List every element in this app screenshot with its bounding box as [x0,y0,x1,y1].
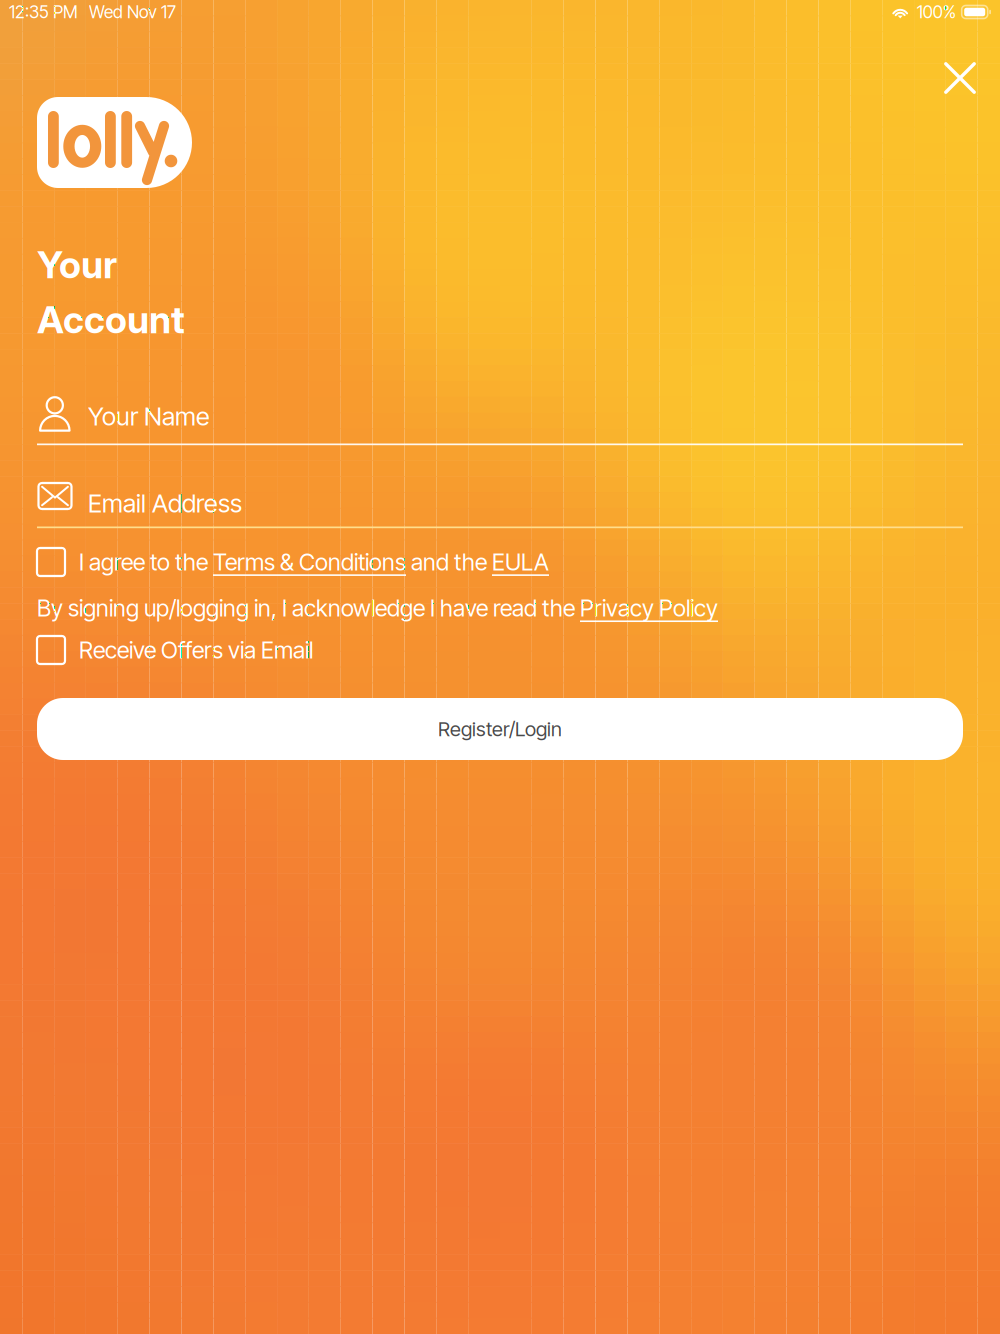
staticText: Email Address [88,488,242,519]
staticText: Your [37,242,117,287]
staticText: Receive Offers via Email [79,636,313,664]
staticText: I agree to the Terms & Conditions and th… [79,548,549,576]
button[interactable]: Receive Offers via Email [37,636,963,664]
staticText: By signing up/logging in, I acknowledge … [37,594,718,622]
staticText: 12:35 PM [9,1,78,22]
staticText: 100% [917,1,956,22]
button[interactable]: I agree to the Terms & Conditions and th… [37,548,963,576]
staticText: Account [37,297,185,342]
button[interactable]: Register/Login [37,698,963,760]
button[interactable]: Close [933,51,987,105]
staticText: Wed Nov 17 [89,1,176,22]
staticText: Your Name [88,401,210,432]
staticText: Register/Login [438,717,562,741]
